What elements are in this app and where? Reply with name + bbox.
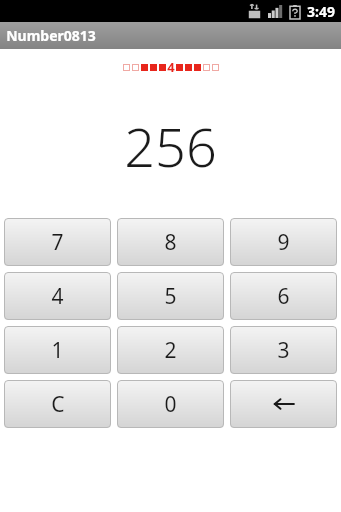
staticText: 256 (124, 109, 217, 183)
button[interactable]: 0 (117, 380, 224, 428)
button[interactable]: 8 (117, 218, 224, 266)
button[interactable]: 2 (117, 326, 224, 374)
staticText: 3:49 (307, 2, 335, 21)
button[interactable]: 3 (230, 326, 337, 374)
button[interactable]: 4 (4, 272, 111, 320)
staticText: 4 (167, 58, 175, 76)
button[interactable]: 5 (117, 272, 224, 320)
staticText: 4 (51, 282, 64, 311)
button[interactable]: 7 (4, 218, 111, 266)
staticText: 6 (277, 282, 290, 311)
button[interactable]: 1 (4, 326, 111, 374)
staticText: C (51, 390, 65, 419)
staticText: 1 (51, 336, 64, 365)
staticText: Number0813 (6, 26, 96, 45)
button[interactable]: 6 (230, 272, 337, 320)
staticText: 9 (277, 228, 290, 257)
staticText: 2 (164, 336, 177, 365)
staticText: 0 (164, 390, 177, 419)
staticText: 5 (164, 282, 177, 311)
staticText: 8 (164, 228, 177, 257)
staticText: 7 (51, 228, 64, 257)
staticText: 3 (277, 336, 290, 365)
button[interactable]: Backspace (230, 380, 337, 428)
button[interactable]: C (4, 380, 111, 428)
button[interactable]: 9 (230, 218, 337, 266)
